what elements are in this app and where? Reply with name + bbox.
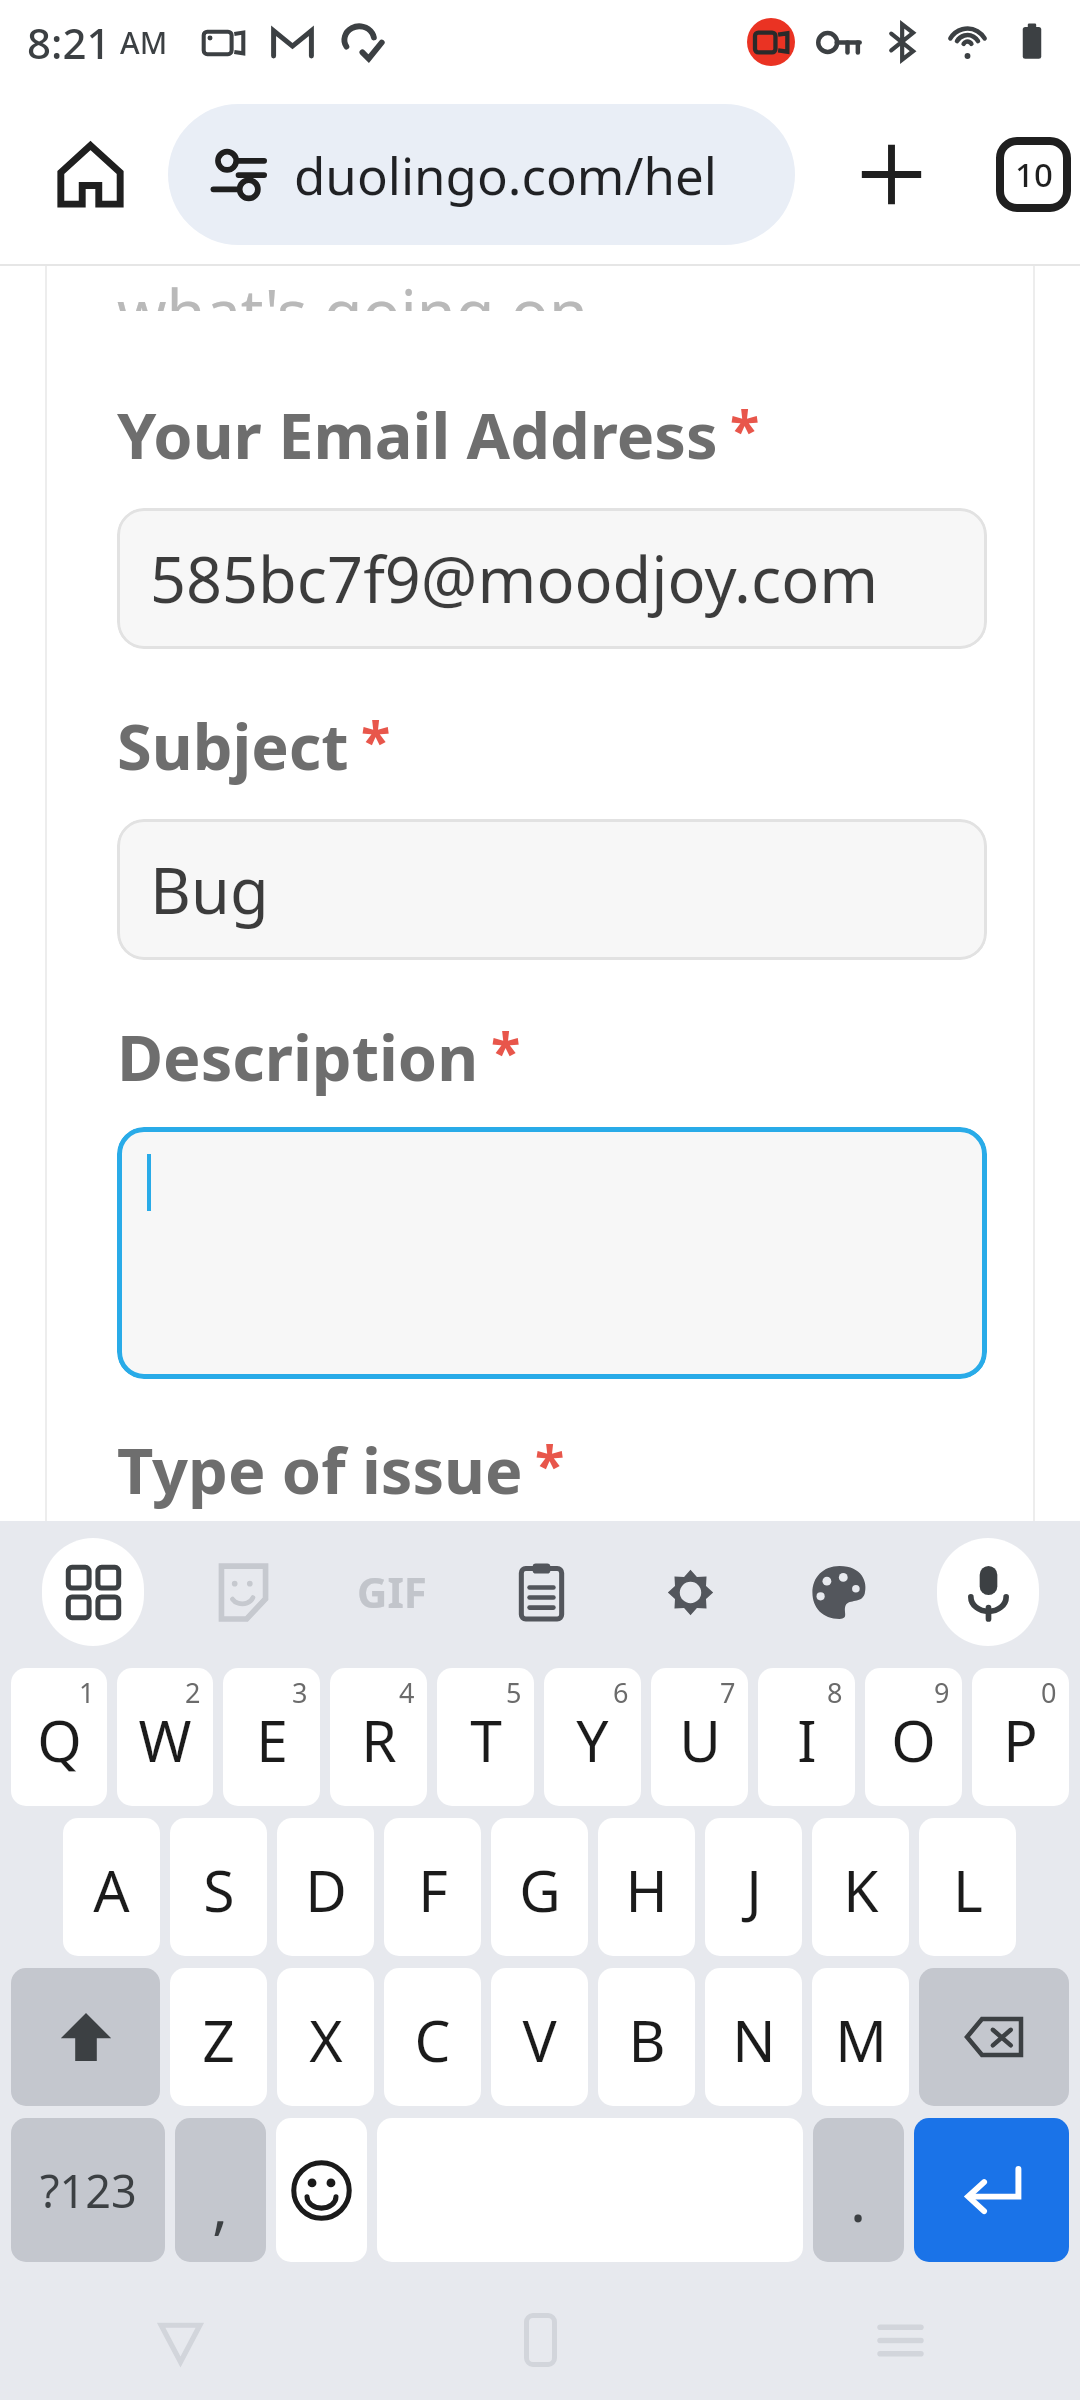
staticText: 6 — [613, 1674, 629, 1711]
button[interactable]: V — [491, 1968, 588, 2106]
staticText: 10 — [1015, 152, 1053, 197]
staticText: W — [138, 1701, 192, 1779]
button[interactable]: B — [598, 1968, 695, 2106]
staticText: G — [519, 1851, 561, 1929]
button[interactable]: Open features — [18, 1521, 168, 1662]
staticText: A — [93, 1851, 130, 1929]
staticText: ?123 — [40, 2160, 137, 2221]
button[interactable]: , — [175, 2118, 266, 2262]
staticText: P — [1003, 1701, 1038, 1779]
staticText: 9 — [934, 1674, 950, 1711]
staticText: Type of issue — [117, 1427, 523, 1513]
button[interactable]: duolingo.com/hel — [168, 104, 795, 245]
button[interactable] — [276, 2118, 367, 2262]
staticText: 1 — [79, 1674, 95, 1711]
staticText: J — [746, 1851, 762, 1929]
button[interactable]: A — [63, 1818, 160, 1956]
button[interactable]: Voice input — [913, 1521, 1062, 1662]
staticText: * — [491, 1014, 521, 1088]
button[interactable]: Settings — [615, 1521, 764, 1662]
staticText: 8 — [827, 1674, 843, 1711]
staticText: K — [843, 1851, 879, 1929]
button[interactable]: 4 — [330, 1668, 427, 1806]
button[interactable]: L — [919, 1818, 1016, 1956]
button[interactable]: . — [813, 2118, 904, 2262]
staticText: C — [414, 2001, 451, 2079]
button[interactable]: H — [598, 1818, 695, 1956]
button[interactable]: 0 — [972, 1668, 1069, 1806]
staticText: 585bc7f9@moodjoy.com — [150, 536, 879, 622]
staticText: R — [361, 1701, 397, 1779]
staticText: 3 — [292, 1674, 308, 1711]
button[interactable]: N — [705, 1968, 802, 2106]
button[interactable]: 8 — [758, 1668, 855, 1806]
button[interactable]: Stickers — [168, 1521, 317, 1662]
button[interactable]: 3 — [223, 1668, 320, 1806]
staticText: E — [256, 1701, 288, 1779]
staticText: V — [522, 2001, 557, 2079]
button[interactable]: Clipboard — [466, 1521, 615, 1662]
button[interactable]: 5 — [437, 1668, 534, 1806]
staticText: Y — [576, 1701, 609, 1779]
staticText: D — [305, 1851, 347, 1929]
staticText: Subject — [117, 703, 349, 789]
staticText: Z — [202, 2001, 235, 2079]
staticText: S — [203, 1851, 235, 1929]
button[interactable]: New tab — [819, 102, 963, 246]
button[interactable]: X — [277, 1968, 374, 2106]
staticText: M — [835, 2001, 887, 2079]
staticText: 5 — [506, 1674, 522, 1711]
button[interactable]: 1 — [11, 1668, 107, 1806]
staticText: * — [361, 703, 391, 777]
staticText: U — [679, 1701, 721, 1779]
staticText: , — [212, 2164, 229, 2246]
staticText: F — [418, 1851, 448, 1929]
staticText: * — [730, 392, 760, 466]
button[interactable]: 585bc7f9@moodjoy.com — [117, 508, 987, 649]
button[interactable]: C — [384, 1968, 481, 2106]
button[interactable] — [117, 1127, 987, 1379]
staticText: H — [625, 1851, 668, 1929]
staticText: Description — [117, 1014, 479, 1100]
button[interactable]: F — [384, 1818, 481, 1956]
button[interactable]: D — [277, 1818, 374, 1956]
button[interactable]: 6 — [544, 1668, 641, 1806]
button[interactable]: ?123 — [11, 2118, 165, 2262]
staticText: GIF — [357, 1563, 427, 1620]
button[interactable]: 2 — [117, 1668, 213, 1806]
staticText: 4 — [399, 1674, 415, 1711]
button[interactable]: Tabs, 10 open — [987, 102, 1080, 246]
staticText: . — [850, 2158, 867, 2240]
staticText: B — [628, 2001, 666, 2079]
staticText: 0 — [1041, 1674, 1057, 1711]
button[interactable]: G — [491, 1818, 588, 1956]
button[interactable]: GIF — [317, 1521, 466, 1662]
button[interactable]: Backspace — [919, 1968, 1069, 2106]
staticText: duolingo.com/hel — [294, 140, 717, 209]
button[interactable]: Themes — [764, 1521, 913, 1662]
button[interactable]: 9 — [865, 1668, 962, 1806]
staticText: Your Email Address — [117, 392, 718, 478]
button[interactable]: S — [170, 1818, 267, 1956]
staticText: Q — [37, 1701, 82, 1779]
button[interactable]: Shift — [11, 1968, 160, 2106]
staticText: 7 — [720, 1674, 736, 1711]
button[interactable]: Bug — [117, 819, 987, 960]
staticText: I — [797, 1701, 817, 1779]
button[interactable]: J — [705, 1818, 802, 1956]
staticText: L — [953, 1851, 983, 1929]
staticText: 2 — [185, 1674, 201, 1711]
button[interactable] — [914, 2118, 1069, 2262]
button[interactable]: 7 — [651, 1668, 748, 1806]
button[interactable]: M — [812, 1968, 909, 2106]
staticText: O — [891, 1701, 936, 1779]
staticText: Bug — [150, 847, 269, 933]
button[interactable]: Z — [170, 1968, 267, 2106]
button[interactable]: K — [812, 1818, 909, 1956]
staticText: N — [732, 2001, 776, 2079]
button[interactable]: Home — [18, 102, 162, 246]
